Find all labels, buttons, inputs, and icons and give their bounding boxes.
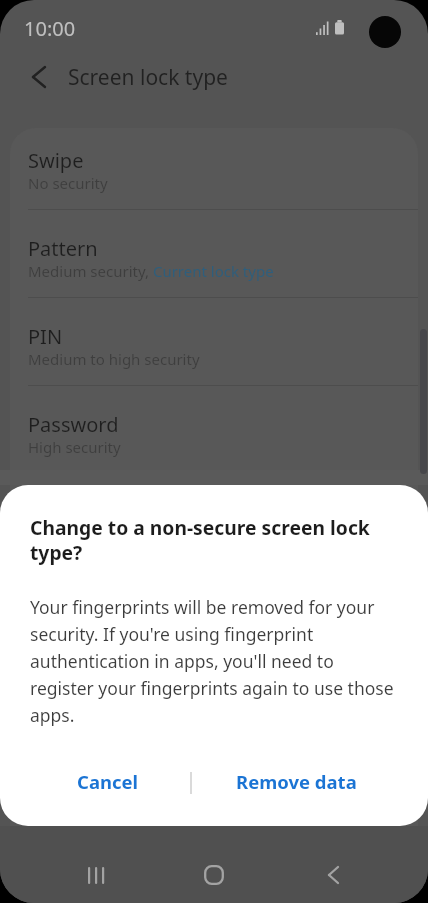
button[interactable]: Password [10, 394, 418, 480]
staticText: Swipe [28, 147, 84, 174]
staticText: Change to a non-secure screen lock type? [30, 514, 370, 566]
staticText: Cancel [77, 769, 139, 794]
staticText: Pattern [28, 235, 98, 262]
staticText: 10:00 [24, 15, 76, 42]
staticText: High security [28, 437, 121, 457]
staticText: PIN [28, 323, 63, 350]
staticText: Password [28, 411, 119, 438]
button[interactable]: Remove data [221, 757, 371, 805]
button[interactable] [72, 853, 120, 897]
button[interactable]: PIN [10, 306, 418, 392]
button[interactable] [18, 56, 60, 98]
staticText: Medium to high security [28, 349, 200, 369]
button[interactable] [190, 853, 238, 897]
button[interactable]: Swipe [10, 130, 418, 216]
staticText: Remove data [236, 769, 357, 794]
staticText: Screen lock type [68, 63, 228, 92]
button[interactable]: Pattern [10, 218, 418, 304]
button[interactable] [309, 853, 357, 897]
staticText: Your fingerprints will be removed for yo… [30, 595, 394, 727]
staticText: No security [28, 173, 108, 193]
button[interactable]: Cancel [58, 757, 158, 805]
staticText: Medium security, Current lock type [28, 261, 274, 281]
